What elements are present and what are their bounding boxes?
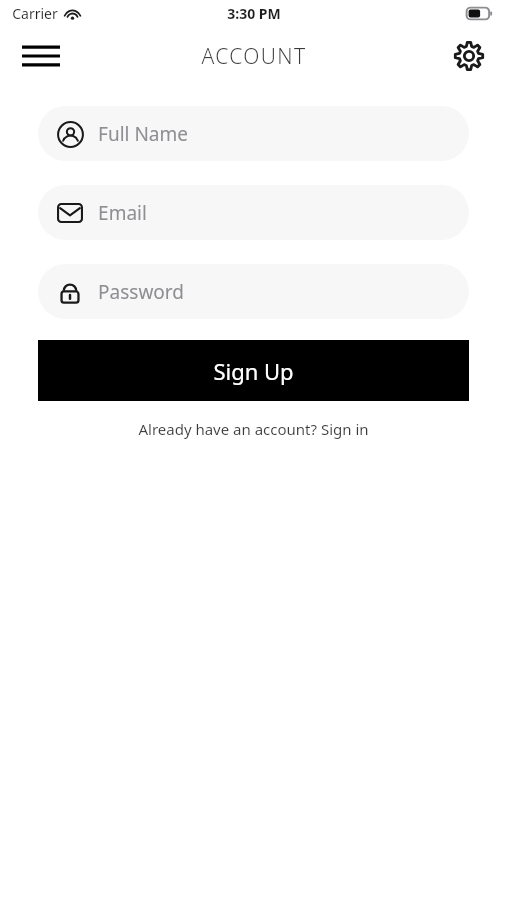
staticText: Password xyxy=(98,279,184,305)
button[interactable]: Sign Up xyxy=(38,340,469,401)
button[interactable]: Email xyxy=(38,185,469,240)
staticText: Already have an account? Sign in xyxy=(138,419,369,439)
staticText: Carrier xyxy=(12,4,58,23)
staticText: Email xyxy=(98,200,147,226)
button[interactable]: Full Name xyxy=(38,106,469,161)
staticText: Sign Up xyxy=(213,356,294,386)
button[interactable]: Menu xyxy=(18,33,64,79)
button[interactable]: Settings xyxy=(447,34,491,78)
staticText: ACCOUNT xyxy=(201,42,307,71)
staticText: 3:30 PM xyxy=(227,4,281,23)
staticText: Full Name xyxy=(98,121,188,147)
button[interactable]: Already have an account? Sign in xyxy=(132,415,375,443)
button[interactable]: Password xyxy=(38,264,469,319)
